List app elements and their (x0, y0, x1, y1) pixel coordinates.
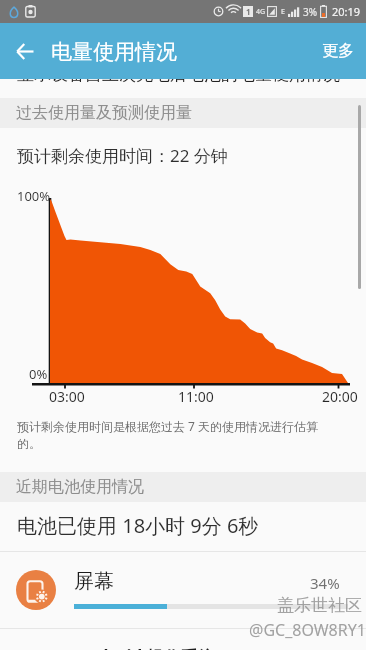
staticText: 4G (256, 7, 266, 17)
button[interactable]: 返回 (2, 28, 48, 74)
staticText: 100% (17, 187, 51, 205)
staticText: 过去使用量及预测使用量 (16, 103, 192, 123)
staticText: 近期电池使用情况 (16, 477, 144, 497)
staticText: 屏幕 (74, 569, 114, 594)
staticText: @GC_8OW8RY1R (249, 619, 366, 641)
button[interactable]: 更多 (302, 25, 366, 77)
staticText: 盖乐世社区 (277, 595, 362, 616)
staticText: 03:00 (49, 387, 85, 406)
staticText: 1 (246, 6, 251, 17)
staticText: 电量使用情况 (51, 39, 177, 65)
staticText: 11:00 (178, 387, 214, 406)
staticText: 电池已使用 18小时 9分 6秒 (17, 512, 259, 539)
staticText: 显示设备自上次充电后电池的电量使用情况 (17, 66, 340, 85)
staticText: 34% (310, 573, 340, 593)
button[interactable]: 屏幕 (0, 552, 366, 628)
staticText: 预计剩余使用时间是根据您过去 7 天的使用情况进行估算 的。 (17, 418, 319, 452)
staticText: 0% (29, 365, 48, 383)
staticText: 20:00 (322, 387, 358, 406)
staticText: 更多 (322, 41, 354, 61)
staticText: 3% (303, 5, 318, 19)
staticText: Android 操作系统 (75, 645, 215, 650)
staticText: 预计剩余使用时间：22 分钟 (17, 144, 228, 167)
staticText: E (281, 7, 285, 17)
staticText: 20:19 (332, 4, 361, 19)
